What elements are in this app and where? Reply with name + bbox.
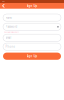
staticText: Sign Up xyxy=(26,54,37,58)
button[interactable]: Password xyxy=(3,23,61,30)
staticText: Password too short xyxy=(4,31,18,33)
staticText: Sign Up xyxy=(26,4,37,8)
button[interactable]: Sign Up xyxy=(3,53,61,60)
button[interactable]: Phone xyxy=(3,43,61,50)
button[interactable]: Back xyxy=(0,3,6,9)
button[interactable]: Name xyxy=(3,14,61,21)
staticText: 9:41 xyxy=(2,1,5,2)
staticText: Name xyxy=(5,16,12,19)
staticText: Password xyxy=(5,25,17,28)
staticText: Email xyxy=(5,36,11,39)
button[interactable]: Email xyxy=(3,34,61,41)
staticText: Phone xyxy=(5,45,15,48)
